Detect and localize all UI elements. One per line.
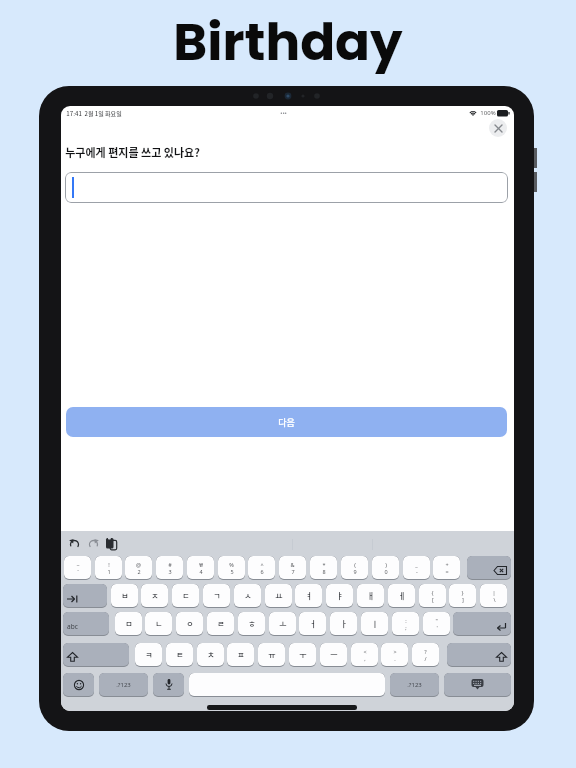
button[interactable]: ㅅ (234, 584, 261, 608)
staticText: . (394, 655, 396, 662)
staticText: } (461, 589, 464, 596)
staticText: & (290, 561, 295, 568)
button[interactable]: abc (63, 612, 109, 636)
staticText: 1 (107, 568, 111, 575)
button[interactable]: ㅊ (197, 643, 224, 667)
button[interactable] (489, 119, 507, 137)
button[interactable]: ㅏ (330, 612, 357, 636)
button[interactable]: ㅗ (269, 612, 296, 636)
button[interactable]: " (423, 612, 450, 636)
button[interactable]: : (392, 612, 419, 636)
button[interactable]: * (310, 556, 337, 580)
button[interactable]: ㅍ (227, 643, 254, 667)
button[interactable]: ㅜ (289, 643, 316, 667)
button[interactable]: ㅑ (326, 584, 353, 608)
button[interactable]: < (351, 643, 378, 667)
button[interactable]: .?123 (390, 673, 439, 697)
staticText: .?123 (116, 681, 131, 689)
button[interactable]: > (381, 643, 408, 667)
staticText: ㅔ (398, 590, 406, 602)
button[interactable] (63, 673, 94, 697)
button[interactable] (189, 673, 385, 697)
button[interactable]: .?123 (99, 673, 148, 697)
staticText: ( (354, 561, 356, 568)
button[interactable]: 다음 (66, 407, 507, 437)
staticText: 5 (230, 568, 234, 575)
button[interactable]: ㄴ (145, 612, 172, 636)
staticText: .?123 (407, 681, 422, 689)
button[interactable]: { (419, 584, 446, 608)
button[interactable]: ㄷ (172, 584, 199, 608)
button[interactable] (444, 673, 511, 697)
staticText: _ (415, 561, 418, 568)
button[interactable]: ㅠ (258, 643, 285, 667)
button[interactable]: % (218, 556, 245, 580)
button[interactable]: _ (403, 556, 430, 580)
staticText: # (168, 561, 172, 568)
button[interactable]: ₩ (187, 556, 214, 580)
button[interactable]: ) (372, 556, 399, 580)
button[interactable]: | (480, 584, 507, 608)
staticText: [ (432, 596, 434, 603)
staticText: : (405, 617, 407, 624)
staticText: ㅅ (244, 590, 252, 602)
staticText: Birthday (173, 6, 403, 78)
button[interactable]: ㅓ (299, 612, 326, 636)
staticText: 다음 (278, 416, 295, 429)
button[interactable]: ㅛ (265, 584, 292, 608)
button[interactable] (153, 673, 184, 697)
button[interactable]: ! (95, 556, 122, 580)
staticText: 6 (260, 568, 264, 575)
staticText: ㅂ (121, 590, 129, 602)
button[interactable]: & (279, 556, 306, 580)
staticText: 3 (168, 568, 172, 575)
button[interactable]: ㅇ (176, 612, 203, 636)
staticText: ㅜ (299, 649, 307, 661)
staticText: 7 (291, 568, 295, 575)
button[interactable]: @ (125, 556, 152, 580)
button[interactable]: ㅔ (388, 584, 415, 608)
staticText: ㅇ (186, 618, 194, 630)
staticText: ㅠ (268, 649, 276, 661)
button[interactable] (63, 643, 129, 667)
button[interactable]: ㅡ (320, 643, 347, 667)
button[interactable]: ㅕ (295, 584, 322, 608)
button[interactable]: ㄹ (207, 612, 234, 636)
button[interactable]: ㅎ (238, 612, 265, 636)
staticText: ㅛ (275, 590, 283, 602)
staticText: 4 (199, 568, 203, 575)
button[interactable]: ㅂ (111, 584, 138, 608)
button[interactable] (467, 556, 511, 580)
staticText: 2 (137, 568, 141, 575)
button[interactable]: ( (341, 556, 368, 580)
button[interactable]: + (433, 556, 460, 580)
button[interactable]: ~ (64, 556, 91, 580)
button[interactable]: ㅌ (166, 643, 193, 667)
button[interactable]: ^ (248, 556, 275, 580)
button[interactable]: # (156, 556, 183, 580)
staticText: abc (67, 622, 78, 631)
staticText: 0 (384, 568, 388, 575)
button[interactable]: ㅈ (141, 584, 168, 608)
button[interactable] (63, 584, 107, 608)
button[interactable] (453, 612, 511, 636)
staticText: ㅗ (279, 618, 287, 630)
button[interactable]: ? (412, 643, 439, 667)
button[interactable]: } (449, 584, 476, 608)
staticText: ₩ (199, 561, 203, 568)
button[interactable]: ㅁ (115, 612, 142, 636)
staticText: ; (405, 624, 407, 631)
button[interactable]: ㅋ (135, 643, 162, 667)
staticText: ' (436, 624, 438, 631)
button[interactable]: ㄱ (203, 584, 230, 608)
staticText: ㅡ (330, 649, 338, 661)
staticText: ㅋ (145, 649, 153, 661)
button[interactable] (447, 643, 511, 667)
staticText: * (322, 561, 326, 568)
staticText: / (424, 655, 427, 662)
button[interactable]: ㅐ (357, 584, 384, 608)
staticText: \ (493, 596, 496, 603)
staticText: > (393, 648, 397, 655)
button[interactable] (65, 172, 508, 203)
button[interactable]: ㅣ (361, 612, 388, 636)
